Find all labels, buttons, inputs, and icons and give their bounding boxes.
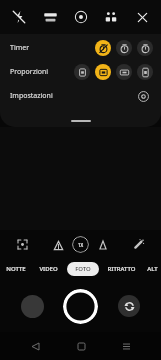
button[interactable]: Aspect ratio 1 to 1 [74,64,90,80]
button[interactable]: Magic filters [130,235,148,253]
staticText: RITRATTO [107,265,136,273]
staticText: Proporzioni [10,67,49,77]
button[interactable]: Back [24,335,46,357]
button[interactable]: Aspect ratio 16 to 9 [116,64,132,80]
button[interactable]: HDR auto [38,5,62,29]
button[interactable]: Gallery [21,295,44,318]
button[interactable]: ALT [145,262,160,276]
staticText: Impostazioni [10,91,53,101]
button[interactable]: Colour effects [69,5,93,29]
button[interactable]: 1X [72,236,89,253]
button[interactable]: FOTO [67,262,99,276]
button[interactable]: Aspect ratio 4 to 3 [95,64,111,80]
staticText: FOTO [75,265,91,273]
button[interactable]: Timer off [95,40,111,56]
button[interactable]: Home [70,335,92,357]
button[interactable]: Switch camera [118,295,140,317]
button[interactable]: VIDEO [37,262,60,276]
button[interactable]: Timer 10 seconds [137,40,153,56]
button[interactable]: Recent apps [115,335,137,357]
staticText: Timer [10,43,30,53]
button[interactable]: Beauty mode [99,5,123,29]
button[interactable]: AI scene detection [13,235,31,253]
button[interactable]: Telephoto lens [95,237,111,253]
button[interactable]: Flash off [7,5,31,29]
button[interactable]: Ultra wide lens [50,237,66,253]
button[interactable]: Take photo [63,289,98,324]
button[interactable]: RITRATTO [105,262,138,276]
staticText: VIDEO [39,265,58,273]
button[interactable]: Impostazioni [0,84,161,108]
staticText: ALT [147,265,158,273]
staticText: 1X [78,242,84,248]
button[interactable]: Timer 3 seconds [116,40,132,56]
button[interactable]: NOTTE [4,262,28,276]
button[interactable]: Close settings [130,5,154,29]
staticText: NOTTE [6,265,26,273]
button[interactable]: Full screen ratio [137,64,153,80]
